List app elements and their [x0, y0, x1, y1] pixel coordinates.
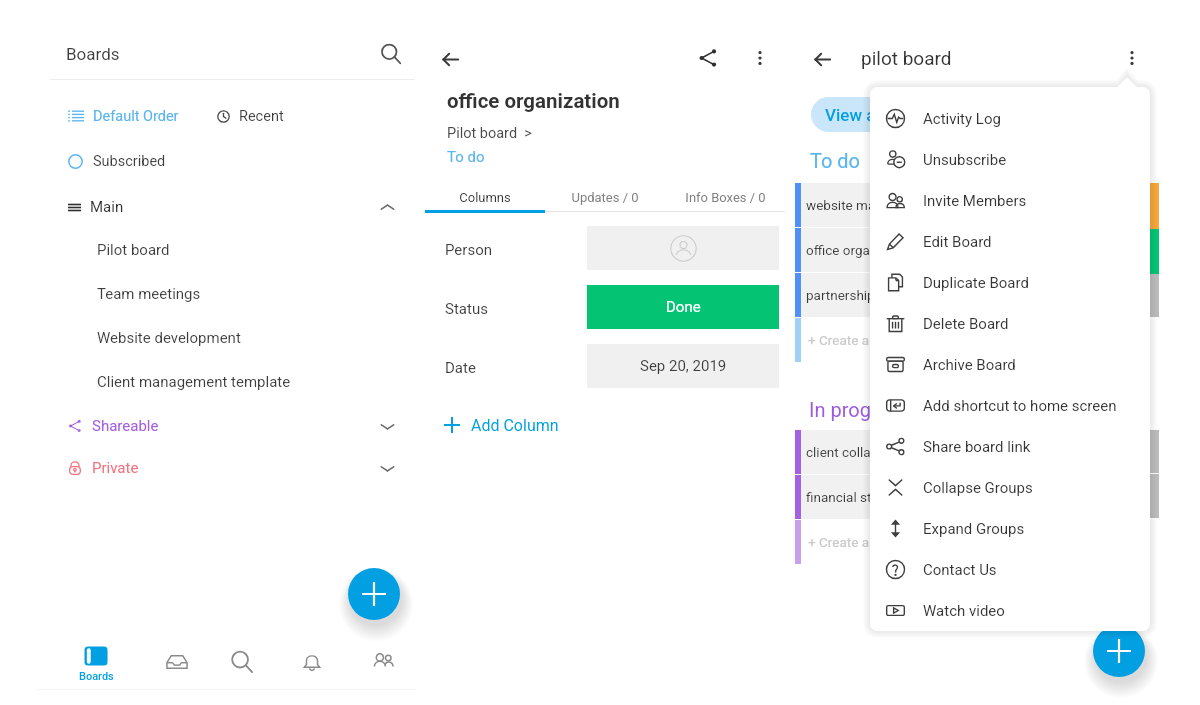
staticText: Add Column [471, 416, 559, 435]
button[interactable]: Website development [52, 316, 410, 360]
button[interactable]: Team meetings [52, 272, 410, 316]
staticText: Sep 20, 2019 [640, 357, 727, 375]
staticText: Boards [79, 670, 114, 683]
button[interactable]: Duplicate Board [870, 262, 1150, 303]
staticText: pilot board [861, 47, 952, 69]
staticText: website ma [806, 197, 876, 213]
button[interactable]: Info Boxes / 0 [665, 182, 785, 212]
button[interactable]: Done [587, 285, 779, 329]
button[interactable]: client collab [795, 430, 895, 474]
button[interactable]: Notifications [286, 638, 338, 686]
staticText: Client management template [97, 373, 291, 391]
button[interactable]: Pilot board [52, 228, 410, 272]
staticText: In prog [809, 398, 871, 421]
button[interactable]: Delete Board [870, 303, 1150, 344]
staticText: Pilot board > [447, 125, 532, 142]
staticText: office orga [806, 242, 870, 258]
button[interactable]: Share [690, 40, 726, 76]
button[interactable]: Collapse Groups [870, 467, 1150, 508]
button[interactable]: Add item [1093, 625, 1145, 677]
button[interactable]: Add Column [444, 410, 559, 440]
button[interactable]: Default Order [68, 105, 179, 127]
button[interactable]: Back [804, 41, 840, 77]
button[interactable]: financial st [795, 475, 895, 519]
button[interactable]: Share board link [870, 426, 1150, 467]
button[interactable]: Edit Board [870, 221, 1150, 262]
staticText: Unsubscribe [923, 151, 1007, 169]
button[interactable]: Contact Us [870, 549, 1150, 590]
staticText: Person [445, 241, 492, 259]
staticText: Duplicate Board [923, 274, 1029, 292]
staticText: Contact Us [923, 561, 997, 579]
button[interactable]: Expand Groups [870, 508, 1150, 549]
staticText: View all [825, 105, 885, 125]
button[interactable]: Boards [52, 36, 410, 72]
button[interactable]: Search [372, 35, 409, 72]
button[interactable]: Inbox [151, 638, 203, 686]
staticText: Date [445, 359, 476, 377]
button[interactable]: Private [52, 447, 410, 489]
staticText: Team meetings [97, 285, 201, 303]
staticText: Collapse Groups [923, 479, 1033, 497]
staticText: office organization [447, 89, 620, 113]
staticText: Expand Groups [923, 520, 1025, 538]
button[interactable]: More options [1114, 40, 1150, 76]
staticText: + Create a [808, 534, 870, 550]
staticText: Done [666, 298, 701, 316]
staticText: client collab [806, 444, 879, 460]
staticText: Main [90, 198, 124, 216]
staticText: Delete Board [923, 315, 1009, 333]
staticText: Default Order [93, 108, 179, 125]
staticText: Share board link [923, 438, 1031, 456]
staticText: Archive Board [923, 356, 1016, 374]
button[interactable]: Archive Board [870, 344, 1150, 385]
staticText: + Create a [808, 332, 870, 348]
staticText: Updates / 0 [571, 190, 639, 205]
button[interactable]: Activity Log [870, 98, 1150, 139]
button[interactable]: + Create a [795, 318, 895, 362]
button[interactable]: partnership [795, 273, 895, 317]
button[interactable]: Shareable [52, 405, 410, 447]
staticText: Status [445, 300, 488, 318]
button[interactable]: + Create a [795, 520, 895, 564]
button[interactable]: Client management template [52, 360, 410, 404]
staticText: Recent [239, 108, 284, 125]
button[interactable]: office orga [795, 228, 895, 272]
button[interactable]: Invite Members [870, 180, 1150, 221]
button[interactable]: Sep 20, 2019 [587, 344, 779, 388]
button[interactable]: Updates / 0 [545, 182, 665, 212]
button[interactable]: Watch video [870, 590, 1150, 631]
staticText: partnership [806, 287, 875, 303]
button[interactable]: Main [52, 186, 410, 228]
button[interactable]: View all [811, 97, 921, 132]
button[interactable]: Recent [217, 105, 284, 127]
staticText: Pilot board [97, 241, 170, 259]
staticText: Activity Log [923, 110, 1001, 128]
staticText: To do [447, 148, 485, 166]
button[interactable] [587, 226, 779, 270]
button[interactable]: Columns [425, 182, 545, 212]
staticText: Add shortcut to home screen [923, 397, 1117, 415]
button[interactable]: Search [216, 638, 268, 686]
button[interactable]: Unsubscribe [870, 139, 1150, 180]
button[interactable]: Add shortcut to home screen [870, 385, 1150, 426]
staticText: Website development [97, 329, 241, 347]
staticText: Boards [66, 44, 120, 64]
staticText: Columns [459, 190, 511, 205]
button[interactable]: Back [432, 41, 468, 77]
staticText: To do [810, 149, 861, 172]
button[interactable]: website ma [795, 183, 895, 227]
button[interactable]: Team [357, 638, 409, 686]
button[interactable]: Boards [70, 638, 122, 686]
button[interactable]: More options [742, 40, 778, 76]
button[interactable]: Subscribed [68, 150, 166, 172]
staticText: financial st [806, 489, 872, 505]
button[interactable]: Add board [348, 568, 400, 620]
staticText: Info Boxes / 0 [685, 190, 766, 205]
staticText: Private [92, 459, 139, 477]
staticText: Subscribed [93, 153, 166, 170]
staticText: Edit Board [923, 233, 992, 251]
staticText: Watch video [923, 602, 1005, 620]
staticText: Shareable [92, 417, 159, 435]
staticText: Invite Members [923, 192, 1027, 210]
